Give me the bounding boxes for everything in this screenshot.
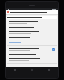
- button[interactable]: App icon: [6, 10, 58, 14]
- button[interactable]: [7, 30, 57, 35]
- button[interactable]: [7, 57, 57, 62]
- button[interactable]: Toggle setting: [52, 48, 55, 51]
- button[interactable]: [7, 16, 57, 19]
- button[interactable]: [7, 20, 57, 25]
- button[interactable]: Toggle setting: [7, 47, 57, 52]
- button[interactable]: [7, 36, 57, 39]
- button[interactable]: [7, 26, 57, 29]
- button[interactable]: [7, 53, 57, 56]
